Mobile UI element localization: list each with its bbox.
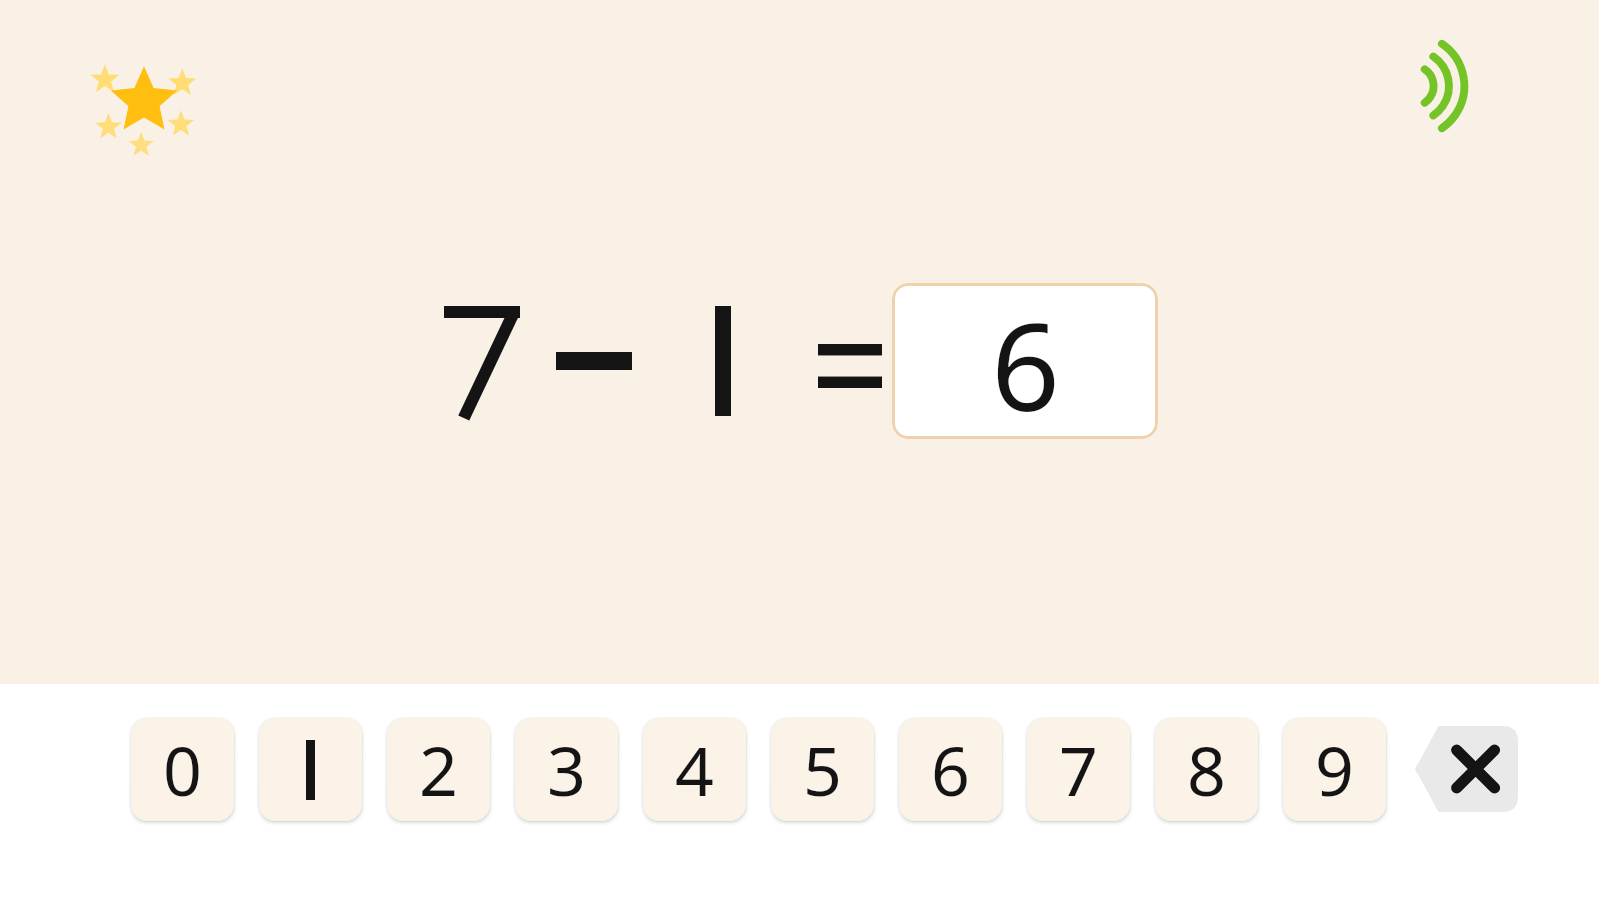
- button[interactable]: 6: [892, 283, 1158, 439]
- staticText: 3: [547, 723, 586, 816]
- staticText: 5: [803, 723, 842, 816]
- button[interactable]: 9: [1283, 718, 1386, 821]
- button[interactable]: 6: [899, 718, 1002, 821]
- button[interactable]: 7: [1027, 718, 1130, 821]
- staticText: 6: [991, 283, 1060, 439]
- button[interactable]: Play sound: [1400, 38, 1496, 134]
- staticText: 8: [1187, 723, 1226, 816]
- button[interactable]: 8: [1155, 718, 1258, 821]
- button[interactable]: 0: [131, 718, 234, 821]
- staticText: 6: [931, 723, 970, 816]
- button[interactable]: Stars earned: [90, 44, 198, 148]
- button[interactable]: 4: [643, 718, 746, 821]
- staticText: 7: [1059, 723, 1098, 816]
- staticText: 4: [675, 723, 714, 816]
- button[interactable]: Backspace: [1412, 726, 1518, 812]
- button[interactable]: 2: [387, 718, 490, 821]
- staticText: 0: [163, 723, 202, 816]
- button[interactable]: 3: [515, 718, 618, 821]
- staticText: 9: [1315, 723, 1354, 816]
- button[interactable]: 5: [771, 718, 874, 821]
- button[interactable]: [259, 718, 362, 821]
- staticText: 2: [419, 723, 458, 816]
